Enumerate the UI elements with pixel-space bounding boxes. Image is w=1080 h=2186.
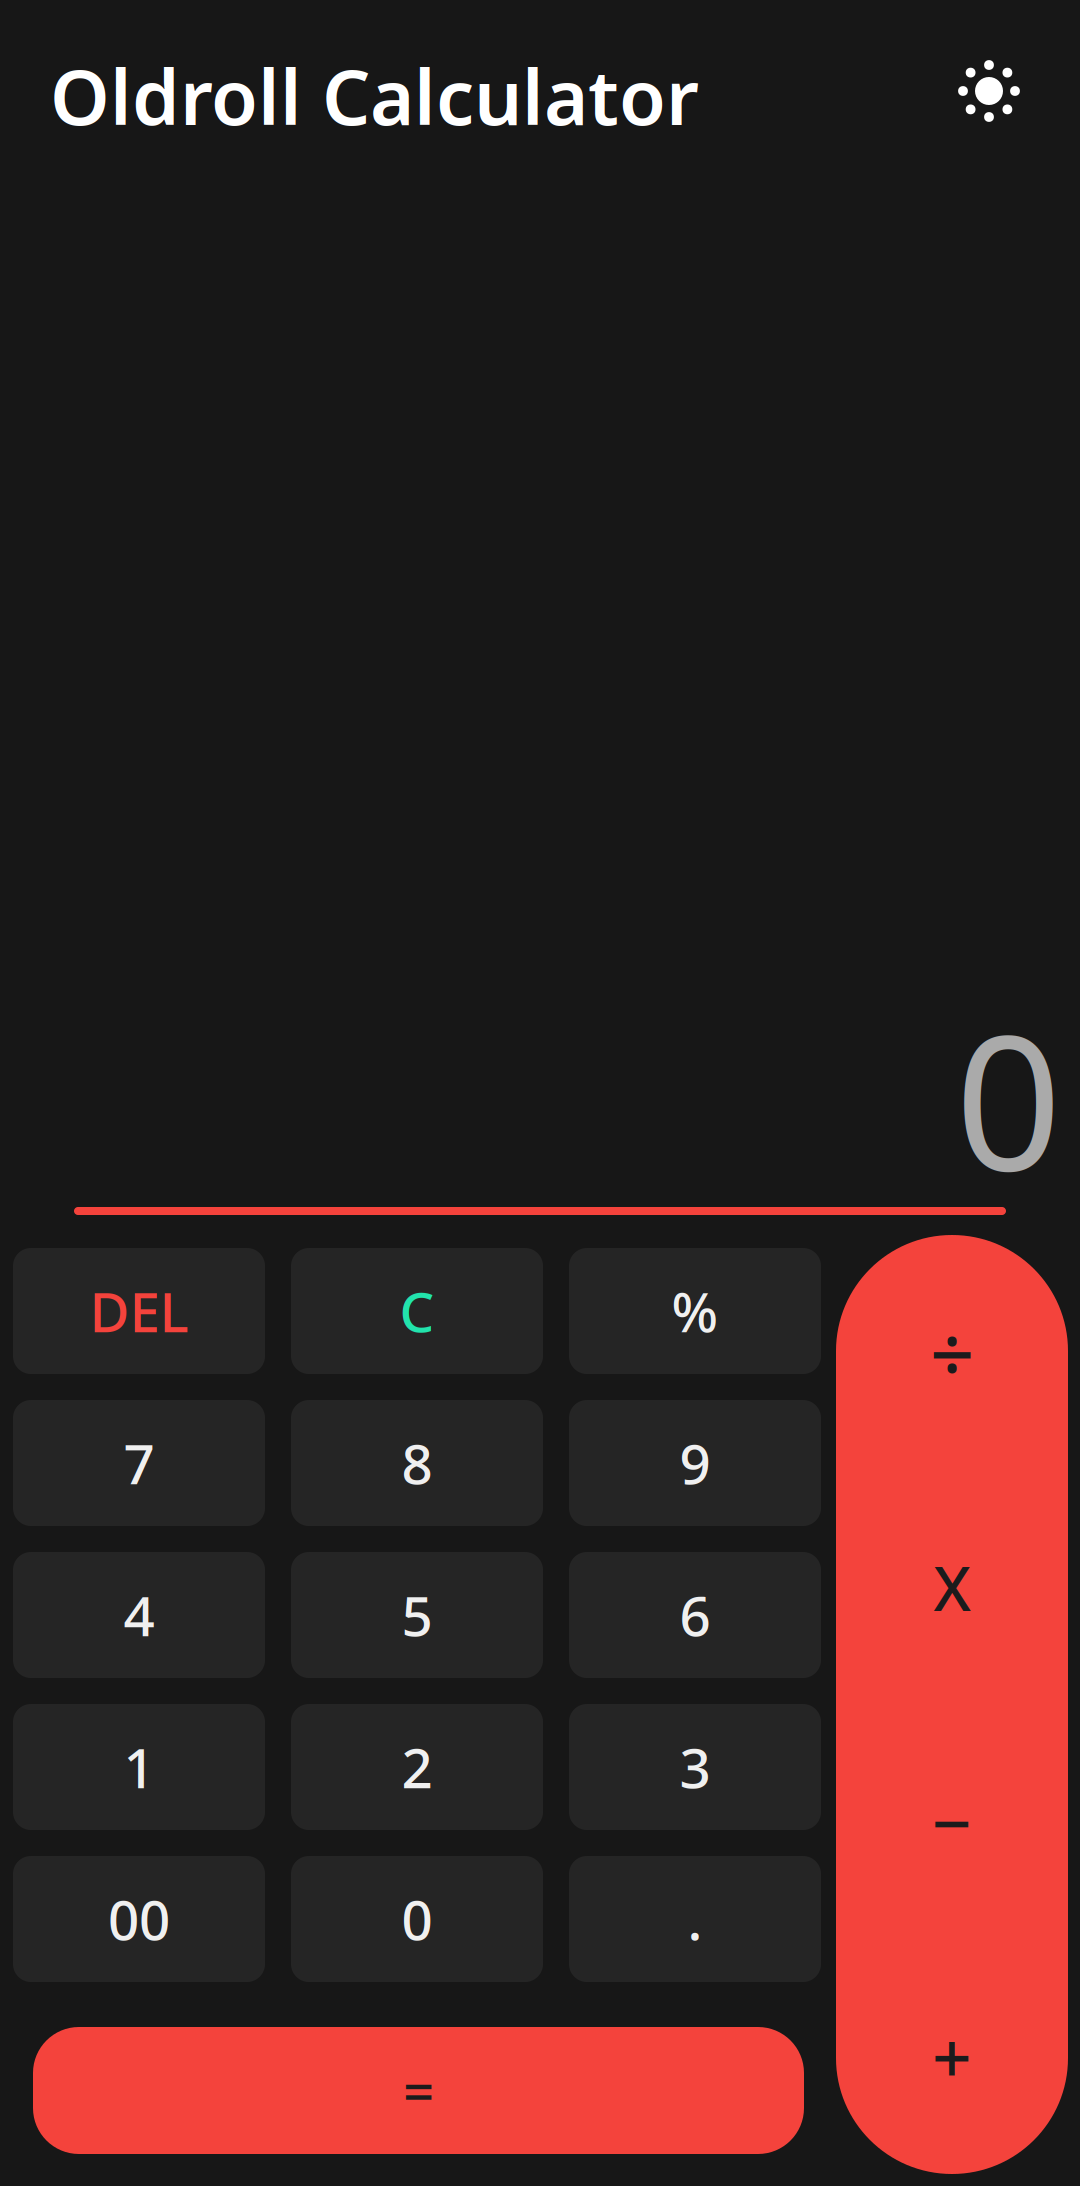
button[interactable]: DEL bbox=[13, 1248, 265, 1374]
button[interactable]: % bbox=[569, 1248, 821, 1374]
staticText: ÷ bbox=[930, 1301, 974, 1404]
staticText: 0 bbox=[401, 1883, 432, 1955]
staticText: 2 bbox=[401, 1731, 432, 1803]
button[interactable]: 4 bbox=[13, 1552, 265, 1678]
button[interactable]: 3 bbox=[569, 1704, 821, 1830]
staticText: + bbox=[932, 2011, 972, 2103]
staticText: 9 bbox=[679, 1427, 710, 1499]
staticText: 6 bbox=[679, 1579, 710, 1651]
button[interactable]: ÷ bbox=[836, 1235, 1068, 1470]
staticText: X bbox=[933, 1546, 970, 1628]
button[interactable]: . bbox=[569, 1856, 821, 1982]
staticText: 1 bbox=[123, 1731, 154, 1803]
button[interactable]: X bbox=[836, 1470, 1068, 1705]
staticText: % bbox=[671, 1275, 718, 1347]
button[interactable]: = bbox=[33, 2027, 804, 2154]
staticText: 00 bbox=[108, 1883, 170, 1955]
staticText: 8 bbox=[401, 1427, 432, 1499]
staticText: 7 bbox=[123, 1427, 154, 1499]
staticText: . bbox=[687, 1883, 702, 1955]
staticText: Oldroll Calculator bbox=[50, 45, 699, 146]
button[interactable]: Toggle brightness bbox=[950, 52, 1028, 130]
staticText: − bbox=[932, 1776, 972, 1868]
staticText: 5 bbox=[401, 1579, 432, 1651]
button[interactable]: 2 bbox=[291, 1704, 543, 1830]
button[interactable]: 8 bbox=[291, 1400, 543, 1526]
button[interactable]: 00 bbox=[13, 1856, 265, 1982]
staticText: C bbox=[399, 1275, 434, 1347]
button[interactable]: 1 bbox=[13, 1704, 265, 1830]
button[interactable]: 0 bbox=[291, 1856, 543, 1982]
button[interactable]: C bbox=[291, 1248, 543, 1374]
staticText: = bbox=[403, 2054, 434, 2127]
staticText: 4 bbox=[123, 1579, 154, 1651]
staticText: 0 bbox=[955, 974, 1062, 1222]
staticText: DEL bbox=[89, 1275, 188, 1347]
button[interactable]: 5 bbox=[291, 1552, 543, 1678]
staticText: 3 bbox=[679, 1731, 710, 1803]
button[interactable]: 9 bbox=[569, 1400, 821, 1526]
button[interactable]: + bbox=[836, 1939, 1068, 2174]
button[interactable]: − bbox=[836, 1704, 1068, 1939]
button[interactable]: 6 bbox=[569, 1552, 821, 1678]
button[interactable]: 7 bbox=[13, 1400, 265, 1526]
